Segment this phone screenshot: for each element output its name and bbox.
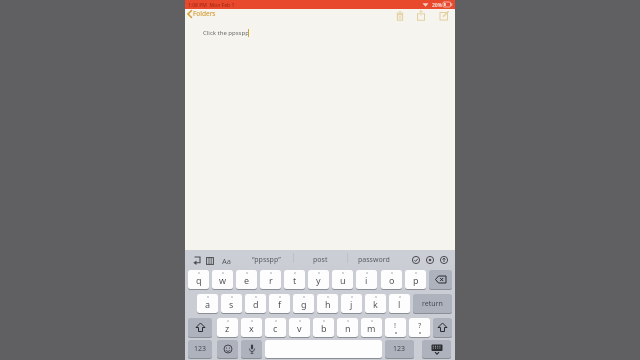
button[interactable]: s <box>221 294 242 313</box>
staticText: q <box>196 274 202 286</box>
staticText: l <box>398 298 401 310</box>
button[interactable]: c <box>265 318 286 337</box>
button[interactable]: 123 <box>188 340 212 358</box>
staticText: 1:08 PM Mon Feb 1 <box>188 2 235 9</box>
button[interactable] <box>188 318 212 337</box>
staticText: o <box>389 274 395 286</box>
button[interactable]: w <box>212 270 233 289</box>
staticText: k <box>373 298 378 310</box>
staticText: b <box>321 322 327 334</box>
button[interactable] <box>217 340 238 358</box>
button[interactable] <box>416 10 426 21</box>
button[interactable]: y <box>308 270 329 289</box>
staticText: h <box>325 298 331 310</box>
staticText: Folders <box>193 9 216 18</box>
button[interactable]: Aa <box>220 253 233 268</box>
staticText: Aa <box>222 256 231 266</box>
button[interactable] <box>433 318 452 337</box>
staticText: u <box>340 274 346 286</box>
button[interactable]: ? <box>409 318 430 337</box>
button[interactable] <box>422 340 451 358</box>
button[interactable]: l <box>389 294 410 313</box>
staticText: password <box>358 255 390 265</box>
button[interactable]: password <box>344 252 404 267</box>
button[interactable]: h <box>317 294 338 313</box>
staticText: r <box>269 274 273 286</box>
button[interactable]: m <box>361 318 382 337</box>
staticText: f <box>278 298 282 310</box>
staticText: e <box>244 274 250 286</box>
button[interactable]: j <box>341 294 362 313</box>
button[interactable]: b <box>313 318 334 337</box>
staticText: g <box>301 298 307 310</box>
staticText: return <box>422 299 443 309</box>
staticText: ? <box>418 320 422 330</box>
button[interactable] <box>395 11 405 21</box>
button[interactable] <box>440 256 448 264</box>
button[interactable]: z <box>217 318 238 337</box>
button[interactable]: p <box>405 270 426 289</box>
staticText: d <box>253 298 259 310</box>
button[interactable]: u <box>332 270 353 289</box>
button[interactable] <box>241 340 262 358</box>
staticText: p <box>413 274 419 286</box>
button[interactable]: q <box>188 270 209 289</box>
button[interactable]: g <box>293 294 314 313</box>
staticText: v <box>297 322 302 334</box>
button[interactable]: 123 <box>385 340 414 358</box>
button[interactable]: return <box>413 294 452 313</box>
button[interactable]: ! <box>385 318 406 337</box>
staticText: y <box>316 274 321 286</box>
staticText: n <box>345 322 351 334</box>
button[interactable]: e <box>236 270 257 289</box>
button[interactable] <box>439 10 450 21</box>
button[interactable] <box>206 257 214 265</box>
staticText: j <box>350 298 353 310</box>
button[interactable]: “ppsspp” <box>236 252 296 267</box>
button[interactable]: t <box>284 270 305 289</box>
staticText: i <box>365 274 368 286</box>
staticText: 123 <box>194 344 207 354</box>
staticText: m <box>367 322 376 334</box>
button[interactable]: Folders <box>193 9 216 18</box>
button[interactable]: x <box>241 318 262 337</box>
button[interactable]: v <box>289 318 310 337</box>
staticText: 123 <box>393 344 406 354</box>
button[interactable] <box>426 256 434 264</box>
staticText: w <box>219 274 227 286</box>
button[interactable]: i <box>356 270 377 289</box>
staticText: t <box>293 274 297 286</box>
button[interactable]: n <box>337 318 358 337</box>
button[interactable]: f <box>269 294 290 313</box>
staticText: “ppsspp” <box>252 255 281 265</box>
button[interactable]: k <box>365 294 386 313</box>
staticText: a <box>205 298 211 310</box>
staticText: post <box>313 255 328 265</box>
staticText: z <box>225 322 230 334</box>
button[interactable] <box>429 270 452 289</box>
button[interactable]: r <box>260 270 281 289</box>
staticText: s <box>229 298 234 310</box>
staticText: c <box>273 322 278 334</box>
button[interactable]: d <box>245 294 266 313</box>
staticText: 20% <box>432 2 442 9</box>
button[interactable]: post <box>296 252 344 267</box>
button[interactable]: a <box>197 294 218 313</box>
button[interactable] <box>192 256 202 265</box>
button[interactable]: o <box>381 270 402 289</box>
staticText: x <box>249 322 254 334</box>
staticText: ! <box>394 320 397 330</box>
button[interactable] <box>412 256 420 264</box>
staticText: Click the ppsspp <box>203 29 249 37</box>
